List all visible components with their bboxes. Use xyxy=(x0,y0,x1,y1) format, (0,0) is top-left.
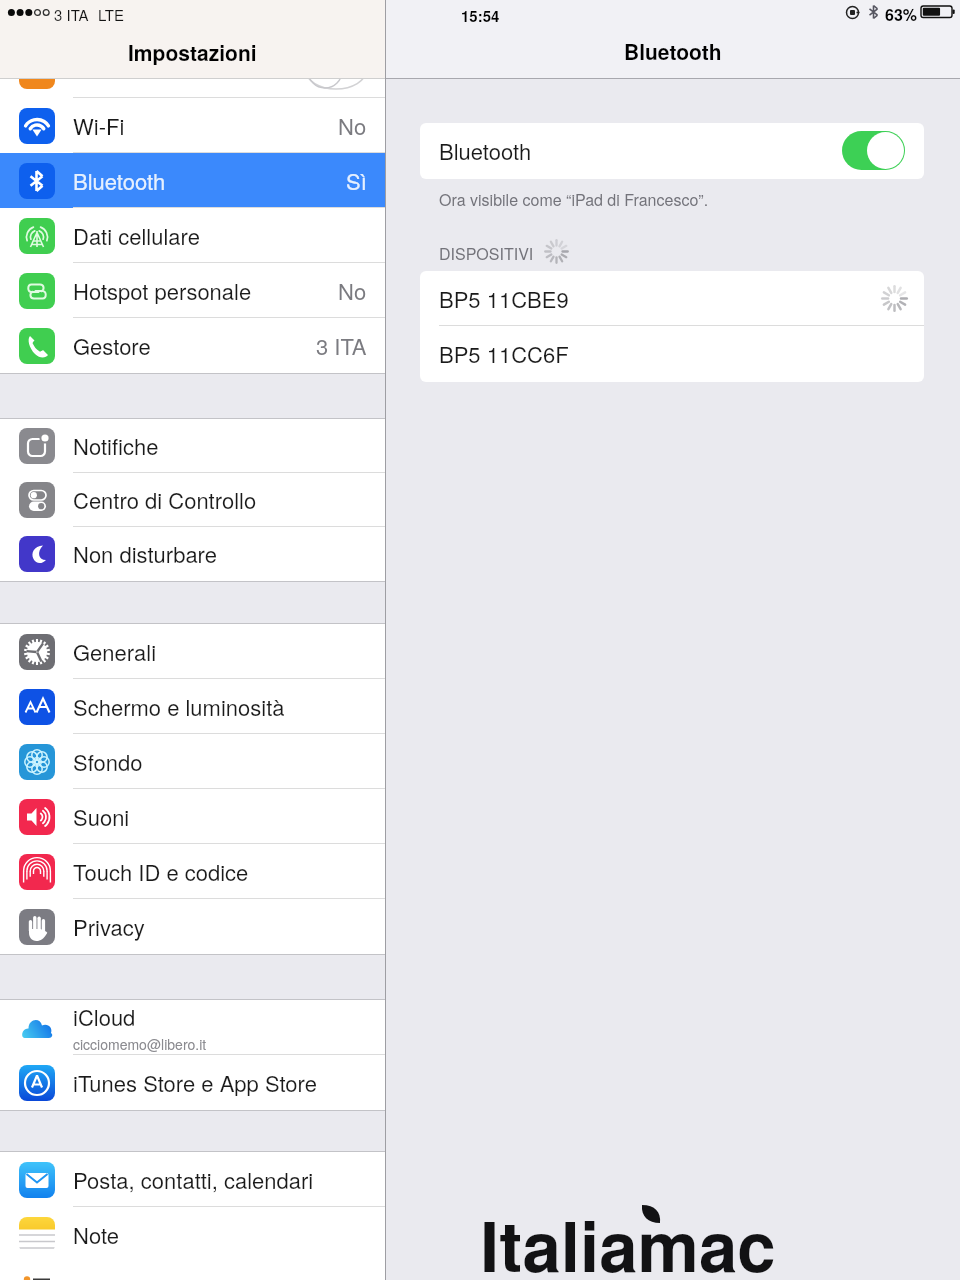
button[interactable]: Privacy xyxy=(0,899,385,954)
staticText: Wi-Fi xyxy=(73,110,125,142)
button[interactable]: Dati cellulare xyxy=(0,208,385,263)
button[interactable]: Non disturbare xyxy=(0,527,385,581)
staticText: No xyxy=(338,275,367,307)
staticText: Sì xyxy=(346,165,367,197)
staticText: 3 ITA xyxy=(54,4,89,25)
button[interactable]: Sfondo xyxy=(0,734,385,789)
button[interactable]: Notifiche xyxy=(0,419,385,473)
button[interactable]: iTunes Store e App Store xyxy=(0,1055,385,1110)
button[interactable]: Note xyxy=(0,1207,385,1262)
button[interactable]: BP5 11CBE9 xyxy=(420,271,924,326)
staticText: No xyxy=(338,110,367,142)
staticText: Ora visibile come “iPad di Francesco”. xyxy=(439,188,709,211)
staticText: Hotspot personale xyxy=(73,275,252,307)
button[interactable]: Generali xyxy=(0,624,385,679)
staticText: Schermo e luminosità xyxy=(73,691,285,723)
staticText: LTE xyxy=(98,4,124,25)
staticText: Sfondo xyxy=(73,746,143,778)
staticText: Posta, contatti, calendari xyxy=(73,1164,314,1196)
button[interactable]: Suoni xyxy=(0,789,385,844)
staticText: Bluetooth xyxy=(439,135,532,167)
staticText: Centro di Controllo xyxy=(73,484,257,516)
button[interactable]: BP5 11CC6F xyxy=(420,326,924,382)
staticText: Generali xyxy=(73,636,157,668)
button[interactable]: Bluetooth xyxy=(0,153,385,208)
staticText: iTunes Store e App Store xyxy=(73,1067,317,1099)
staticText: BP5 11CBE9 xyxy=(439,283,569,315)
button[interactable]: Centro di Controllo xyxy=(0,473,385,527)
staticText: Dati cellulare xyxy=(73,220,200,252)
button[interactable]: Wi-Fi xyxy=(0,98,385,153)
button[interactable]: Bluetooth on xyxy=(842,131,905,170)
staticText: 15:54 xyxy=(461,5,500,26)
staticText: 63% xyxy=(885,3,918,26)
button[interactable]: Schermo e luminosità xyxy=(0,679,385,734)
staticText: Bluetooth xyxy=(624,36,722,66)
staticText: cicciomemo@libero.it xyxy=(73,1034,207,1054)
staticText: Italiamac xyxy=(480,1194,776,1280)
button[interactable]: Gestore xyxy=(0,318,385,373)
staticText: Gestore xyxy=(73,330,151,362)
staticText: Touch ID e codice xyxy=(73,856,249,888)
staticText: DISPOSITIVI xyxy=(439,242,534,265)
staticText: Privacy xyxy=(73,911,145,943)
button[interactable]: Hotspot personale xyxy=(0,263,385,318)
button[interactable]: Posta, contatti, calendari xyxy=(0,1152,385,1207)
staticText: Non disturbare xyxy=(73,538,217,570)
staticText: Notifiche xyxy=(73,430,159,462)
staticText: Suoni xyxy=(73,801,130,833)
staticText: Impostazioni xyxy=(128,37,257,67)
staticText: 3 ITA xyxy=(316,330,367,362)
button[interactable]: iCloud xyxy=(0,1000,385,1055)
staticText: Bluetooth xyxy=(73,165,166,197)
staticText: BP5 11CC6F xyxy=(439,338,569,370)
staticText: iCloud xyxy=(73,1001,136,1033)
button[interactable]: Touch ID e codice xyxy=(0,844,385,899)
staticText: Note xyxy=(73,1219,119,1251)
